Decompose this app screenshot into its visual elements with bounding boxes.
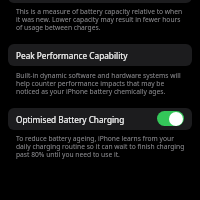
- staticText: Built-in dynamic software and hardware s…: [16, 71, 185, 96]
- staticText: Optimised Battery Charging: [16, 114, 125, 125]
- button[interactable]: Peak Performance Capability: [8, 44, 192, 66]
- button[interactable]: Optimised Battery Charging switch, on: [157, 111, 184, 126]
- staticText: This is a measure of battery capacity re…: [16, 7, 185, 32]
- staticText: Peak Performance Capability: [16, 50, 128, 61]
- button[interactable]: [8, 0, 192, 3]
- staticText: To reduce battery ageing, iPhone learns …: [16, 134, 185, 159]
